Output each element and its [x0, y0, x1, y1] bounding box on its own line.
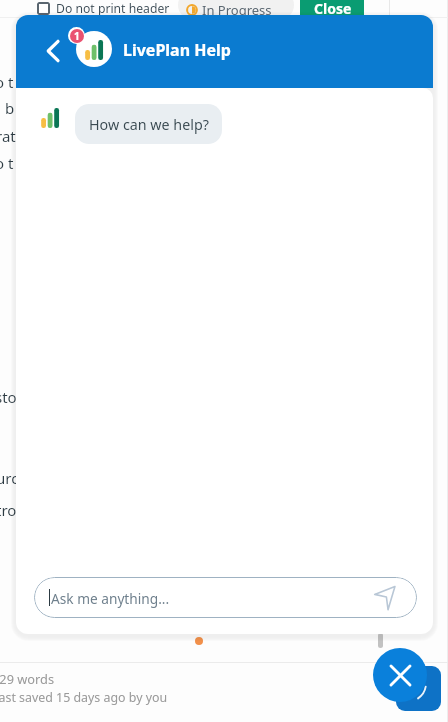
staticText: b — [5, 98, 15, 118]
staticText: In Progress — [202, 1, 272, 19]
button[interactable]: How can we help? — [75, 104, 222, 144]
button[interactable]: Ask me anything... — [34, 577, 417, 618]
staticText: o t — [0, 153, 14, 173]
staticText: Last saved 15 days ago by you — [0, 689, 168, 706]
staticText: How can we help? — [89, 115, 209, 134]
staticText: Close — [314, 0, 352, 18]
staticText: rat — [0, 126, 16, 146]
staticText: LivePlan Help — [123, 39, 231, 61]
button[interactable]: Close — [300, 0, 364, 17]
staticText: 1 — [74, 29, 80, 43]
staticText: sto — [0, 387, 17, 407]
staticText: urc — [0, 468, 19, 488]
button[interactable]: Do not print header checkbox — [37, 2, 50, 15]
button[interactable]: In Progress — [178, 0, 294, 20]
button[interactable]: Close chat — [373, 648, 427, 702]
staticText: 229 words — [0, 670, 55, 687]
staticText: o t — [0, 72, 14, 92]
staticText: Ask me anything... — [51, 589, 170, 608]
button[interactable]: Back — [39, 37, 67, 65]
staticText: tro — [0, 500, 17, 520]
button[interactable]: Send — [370, 582, 401, 613]
staticText: Do not print header — [56, 0, 170, 17]
